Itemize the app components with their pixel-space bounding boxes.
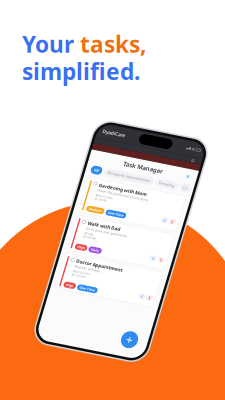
staticText: DyadiCare (116, 135, 162, 147)
staticText: Walk with Dad (140, 319, 208, 331)
staticText: 7:00 AM (146, 349, 165, 356)
staticText: All (122, 214, 131, 225)
button[interactable]: All (115, 211, 138, 228)
staticText: Task Manager (175, 188, 225, 204)
staticText: Go to park and spend time (140, 331, 225, 340)
button[interactable]: Walk with Dad (115, 314, 225, 386)
button[interactable]: Gardening with Mom (115, 236, 225, 308)
staticText: Water the plants and prune them (140, 253, 225, 262)
staticText: Your (22, 29, 80, 59)
staticText: Recipient interventions (149, 214, 225, 225)
button[interactable]: Recipient interventions (142, 211, 225, 228)
staticText: Gardening with Mom (140, 241, 225, 253)
staticText: Daily (146, 342, 158, 349)
staticText: Medium (134, 292, 161, 301)
staticText: simplified. (22, 56, 140, 86)
staticText: Jan 15, 2025 (146, 264, 174, 271)
staticText: tasks, (80, 29, 146, 59)
